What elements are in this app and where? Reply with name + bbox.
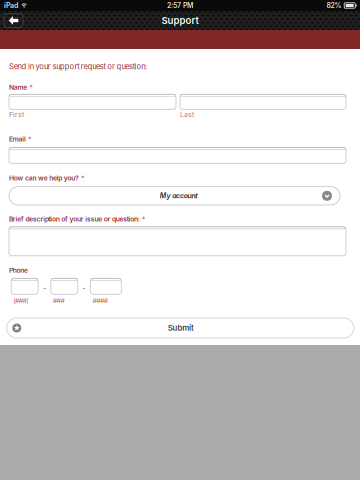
staticText: iPad (4, 1, 18, 10)
staticText: Support (161, 15, 198, 26)
button[interactable]: Submit (7, 318, 354, 338)
staticText: (###) (13, 297, 28, 305)
staticText: My account (160, 192, 198, 200)
staticText: 82% (326, 1, 341, 10)
staticText: Submit (168, 323, 194, 333)
staticText: Brief description of your issue or quest… (9, 215, 140, 223)
staticText: 2:57 PM (167, 1, 193, 10)
staticText: Last (180, 110, 194, 118)
button[interactable]: My account (9, 187, 340, 205)
button[interactable]: Back (4, 14, 23, 27)
staticText: * (79, 174, 85, 182)
staticText: Send in your support request or question… (9, 62, 147, 71)
staticText: First (9, 110, 24, 118)
staticText: ### (53, 297, 64, 305)
staticText: - (83, 284, 86, 292)
staticText: Email (9, 135, 26, 143)
staticText: #### (92, 297, 108, 305)
staticText: - (43, 284, 46, 292)
staticText: Name (9, 83, 27, 91)
staticText: * (140, 215, 146, 223)
staticText: * (26, 135, 32, 143)
staticText: Phone (9, 266, 28, 274)
staticText: * (27, 83, 33, 91)
staticText: How can we help you? (9, 174, 79, 182)
